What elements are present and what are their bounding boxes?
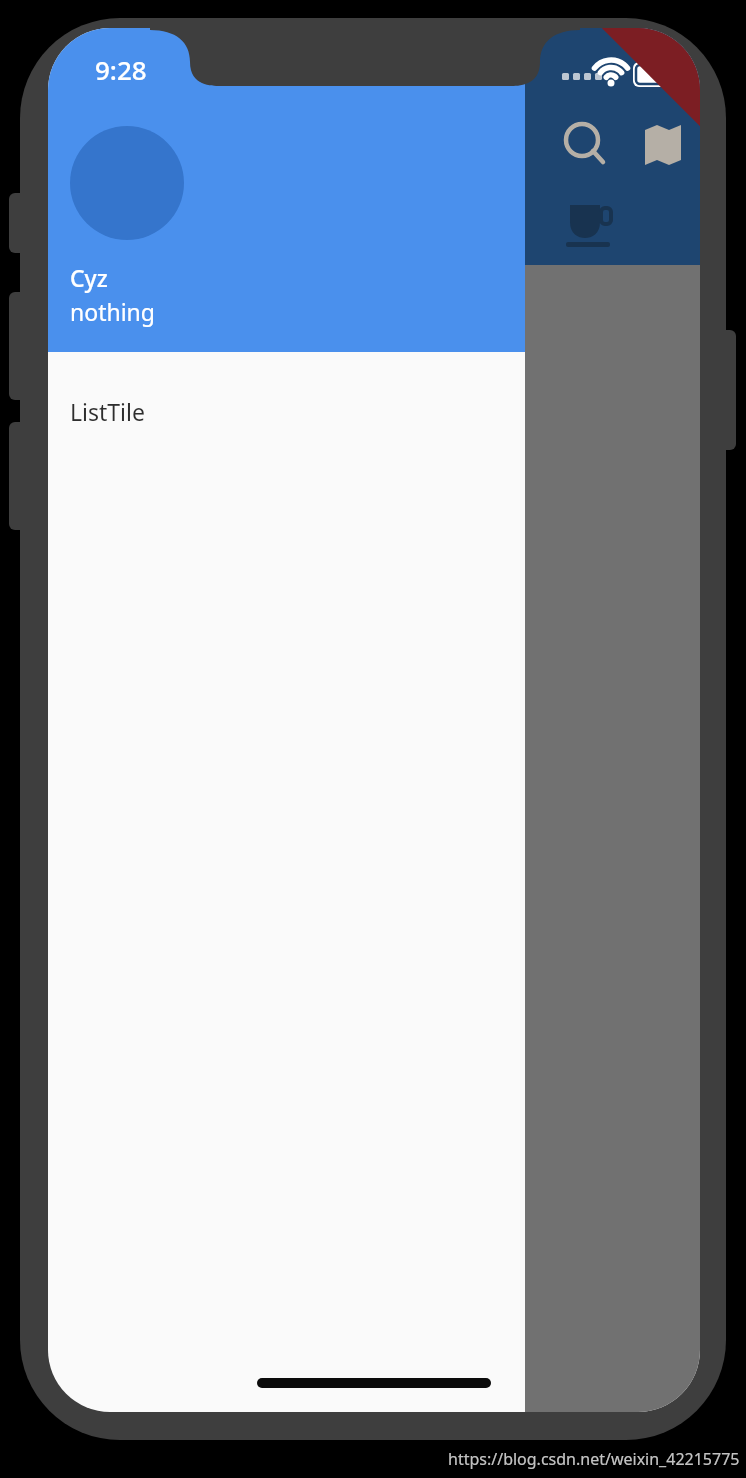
button[interactable]: Close navigation drawer <box>525 265 700 1412</box>
staticText: nothing <box>70 296 155 327</box>
button[interactable]: Search <box>554 113 618 177</box>
button[interactable]: Coffee tab <box>558 190 622 254</box>
staticText: Cyz <box>70 262 108 293</box>
staticText: https://blog.csdn.net/weixin_42215775 <box>448 1448 740 1470</box>
button[interactable]: ListTile <box>48 380 525 442</box>
button[interactable]: Map <box>631 113 695 177</box>
staticText: ListTile <box>70 396 145 427</box>
button[interactable]: Account avatar <box>70 126 184 240</box>
staticText: 9:28 <box>95 52 147 87</box>
